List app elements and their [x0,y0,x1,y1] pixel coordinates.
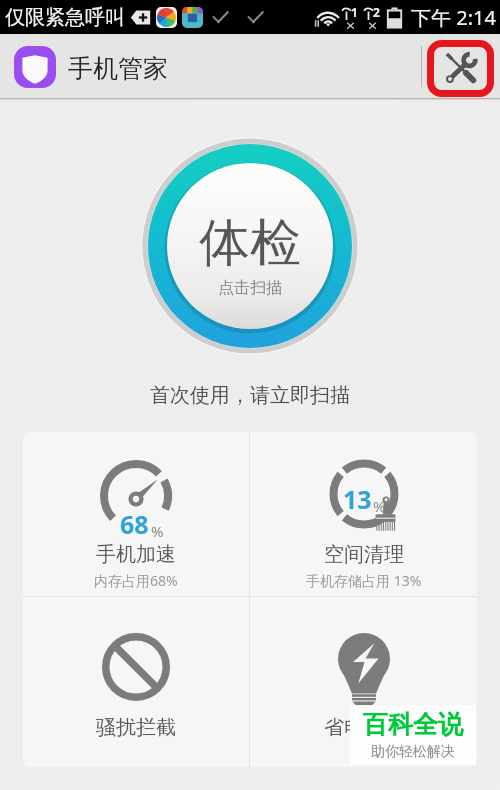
button[interactable]: 68 [23,432,249,596]
staticText: 1 [351,4,358,20]
staticText: 骚扰拦截 [96,715,176,740]
staticText: 手机存储占用 13% [306,571,422,590]
staticText: 13 [343,482,372,516]
button[interactable]: 13 [250,432,477,596]
staticText: 仅限紧急呼叫 [5,5,125,30]
staticText: 手机管家 [68,53,168,84]
staticText: 2 [373,4,380,20]
staticText: 内存占用68% [94,571,178,590]
staticText: % [151,521,164,541]
staticText: 省电管理 [324,715,404,740]
button[interactable]: 省电管理 [250,597,477,767]
button[interactable]: 工具箱 [428,40,494,96]
staticText: 68 [120,507,149,541]
button[interactable]: 骚扰拦截 [23,597,249,767]
staticText: 百科全说 [363,709,463,740]
staticText: 手机加速 [96,542,176,567]
button[interactable]: 体检 点击扫描 [142,138,358,354]
staticText: 下午 2:14 [411,4,496,31]
staticText: 首次使用，请立即扫描 [150,383,350,408]
staticText: 空间清理 [324,542,404,567]
staticText: 体检 [199,211,301,275]
staticText: 助你轻松解决 [371,743,455,761]
staticText: % [373,496,386,516]
staticText: 点击扫描 [218,278,282,298]
